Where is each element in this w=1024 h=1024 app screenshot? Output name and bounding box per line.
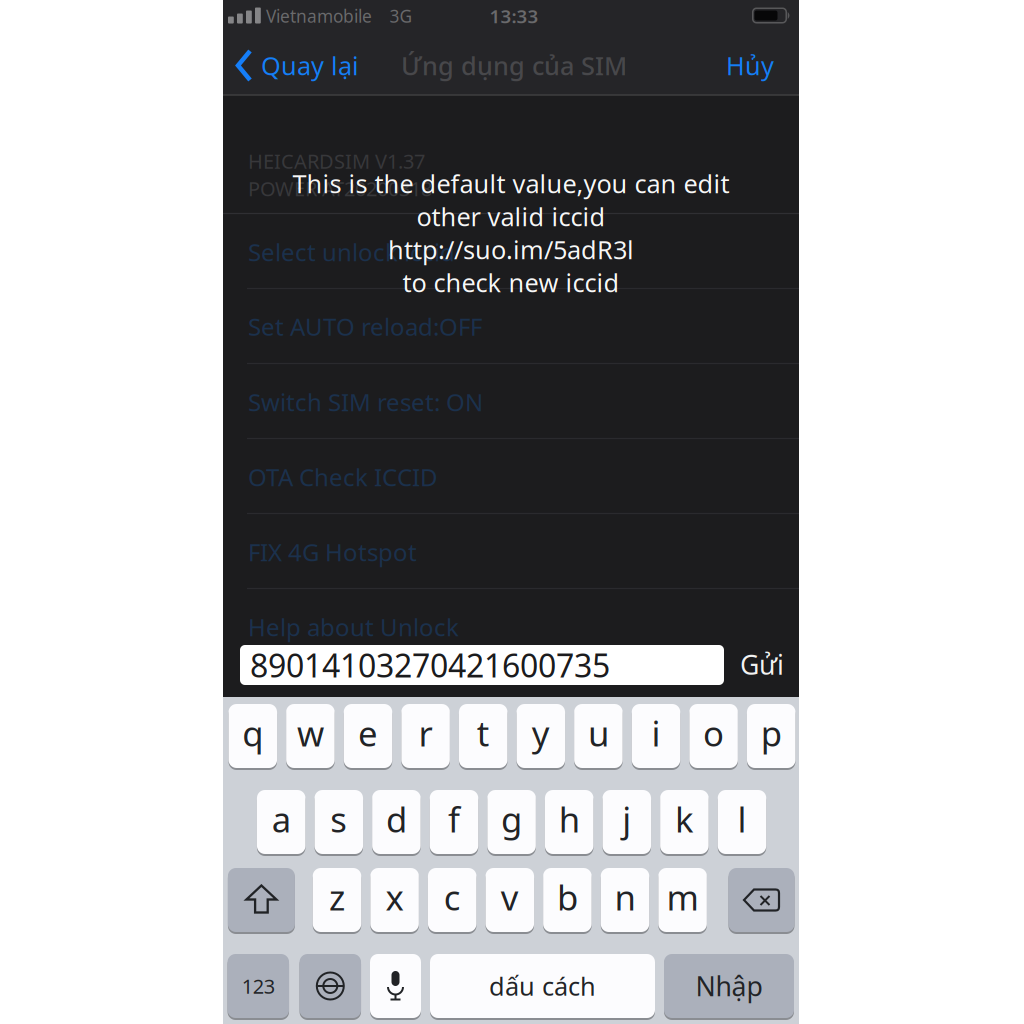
staticText: 3G	[389, 4, 412, 27]
staticText: Switch SIM reset: ON	[248, 386, 483, 418]
staticText: f	[448, 796, 460, 842]
button[interactable]: d	[372, 790, 421, 854]
button[interactable]: t	[459, 704, 507, 768]
staticText: 13:33	[489, 4, 538, 28]
button[interactable]: v	[486, 868, 534, 932]
staticText: POWER AT20200318	[248, 175, 432, 202]
button[interactable]: a	[257, 790, 305, 854]
button[interactable]: h	[545, 790, 593, 854]
staticText: i	[651, 710, 660, 756]
button[interactable]: y	[516, 704, 565, 768]
staticText: to check new iccid	[402, 266, 619, 299]
staticText: a	[272, 796, 291, 842]
staticText: OTA Check ICCID	[248, 461, 438, 493]
staticText: x	[386, 874, 404, 920]
button[interactable]: l	[718, 790, 766, 854]
button[interactable]: 123	[228, 954, 289, 1018]
staticText: t	[477, 710, 490, 756]
staticText: l	[737, 796, 746, 842]
button[interactable]: f	[430, 790, 478, 854]
button[interactable]: Shift	[228, 868, 295, 932]
staticText: http://suo.im/5adR3l	[388, 233, 634, 266]
staticText: o	[703, 710, 724, 756]
staticText: y	[532, 710, 550, 756]
button[interactable]: b	[543, 868, 592, 932]
staticText: dấu cách	[489, 969, 596, 1003]
staticText: HEICARDSIM V1.37	[248, 148, 425, 174]
button[interactable]: Hủy	[726, 49, 774, 82]
staticText: Quay lại	[261, 49, 359, 82]
button[interactable]: Nhập	[664, 954, 794, 1018]
staticText: h	[559, 796, 580, 842]
staticText: 123	[242, 973, 275, 999]
staticText: This is the default value,you can edit	[292, 167, 729, 200]
button[interactable]: n	[601, 868, 649, 932]
staticText: p	[761, 710, 782, 756]
button[interactable]: x	[370, 868, 419, 932]
staticText: e	[358, 710, 378, 756]
staticText: 89014103270421600735	[250, 644, 610, 686]
button[interactable]: u	[574, 704, 623, 768]
button[interactable]: Back	[235, 49, 359, 82]
button[interactable]: s	[315, 790, 363, 854]
staticText: v	[501, 874, 519, 920]
staticText: Help about Unlock	[248, 611, 459, 643]
staticText: m	[667, 874, 699, 920]
staticText: other valid iccid	[416, 200, 605, 233]
staticText: b	[557, 874, 578, 920]
button[interactable]: p	[747, 704, 795, 768]
button[interactable]: k	[660, 790, 709, 854]
staticText: Vietnamobile	[266, 4, 372, 27]
staticText: n	[614, 874, 635, 920]
button[interactable]: q	[229, 704, 277, 768]
staticText: Gửi	[740, 647, 784, 682]
button[interactable]: dấu cách	[430, 954, 655, 1018]
button[interactable]: Dictate	[370, 954, 421, 1018]
button[interactable]: w	[286, 704, 335, 768]
staticText: Select unlock iccid	[248, 236, 455, 268]
staticText: j	[622, 796, 631, 842]
staticText: s	[330, 796, 347, 842]
staticText: g	[501, 796, 522, 842]
button[interactable]: Gửi	[740, 647, 784, 682]
staticText: Ứng dụng của SIM	[401, 49, 627, 82]
button[interactable]: m	[658, 868, 707, 932]
staticText: z	[329, 874, 345, 920]
staticText: Nhập	[695, 968, 762, 1004]
button[interactable]: ICCID input field	[240, 644, 724, 686]
button[interactable]: z	[313, 868, 361, 932]
button[interactable]: r	[401, 704, 450, 768]
staticText: w	[297, 710, 324, 756]
button[interactable]: Delete	[728, 868, 794, 932]
button[interactable]: j	[602, 790, 651, 854]
button[interactable]: i	[632, 704, 680, 768]
staticText: c	[444, 874, 461, 920]
staticText: r	[419, 710, 433, 756]
button[interactable]: e	[344, 704, 392, 768]
staticText: FIX 4G Hotspot	[248, 536, 417, 568]
staticText: k	[675, 796, 694, 842]
button[interactable]: o	[689, 704, 738, 768]
staticText: d	[386, 796, 407, 842]
staticText: q	[242, 710, 263, 756]
button[interactable]: c	[428, 868, 476, 932]
button[interactable]: g	[487, 790, 536, 854]
button[interactable]: Next keyboard	[300, 954, 361, 1018]
staticText: u	[588, 710, 609, 756]
staticText: Hủy	[726, 49, 774, 82]
staticText: Set AUTO reload:OFF	[248, 311, 482, 342]
